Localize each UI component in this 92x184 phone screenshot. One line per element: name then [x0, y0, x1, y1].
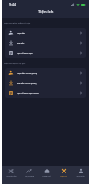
button[interactable]: Tài khoản — [72, 166, 89, 184]
button[interactable]: Lịch sử giao dịch TK/TG — [5, 88, 86, 98]
staticText: Rút tiền TK/TG (COD) — [17, 82, 37, 85]
button[interactable]: Nộp tiền TK/TG (COD) — [5, 68, 86, 78]
staticText: Lịch sử giao dịch — [17, 52, 33, 55]
staticText: Lịch sử giao dịch TK/TG — [17, 92, 39, 95]
button[interactable]: Nộp tiền — [5, 28, 86, 38]
button[interactable]: Thị trường — [20, 166, 38, 184]
staticText: Tài khoản — [76, 175, 85, 177]
staticText: Tiện ích — [38, 9, 54, 15]
staticText: 9:44 — [9, 2, 17, 7]
staticText: Rút tiền — [17, 42, 25, 45]
button[interactable]: Lịch sử giao dịch — [5, 48, 86, 58]
button[interactable]: Chuyển tiền — [2, 166, 20, 184]
button[interactable]: Rút tiền — [5, 38, 86, 48]
staticText: Thị trường — [25, 175, 34, 177]
staticText: Tiện ích — [60, 175, 67, 177]
button[interactable]: Trang chủ — [38, 166, 55, 184]
staticText: Nộp tiền — [17, 32, 26, 35]
staticText: TIỆN ÍCH BẢO HIỂM XÃ HỘI — [4, 22, 31, 25]
staticText: Trang chủ — [42, 175, 51, 177]
staticText: Chuyển tiền — [6, 175, 17, 177]
button[interactable]: Rút tiền TK/TG (COD) — [5, 78, 86, 88]
button[interactable]: Tiện ích — [55, 166, 72, 184]
staticText: Nộp tiền TK/TG (COD) — [17, 72, 38, 75]
staticText: TIỆN ÍCH DỊCH VỤ QLT — [4, 62, 26, 65]
